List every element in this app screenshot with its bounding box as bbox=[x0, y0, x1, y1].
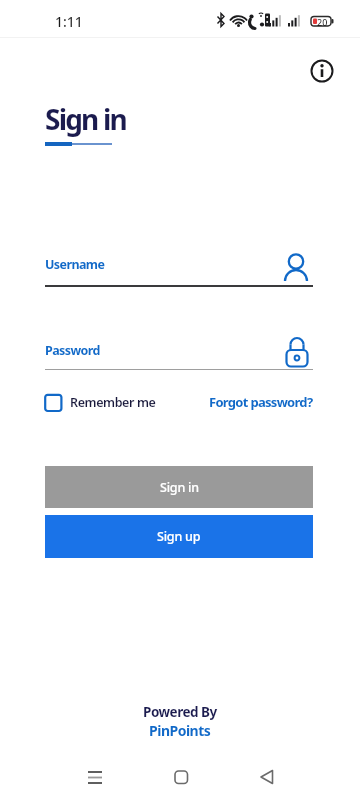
button[interactable] bbox=[77, 759, 113, 795]
button[interactable]: Password bbox=[45, 334, 313, 370]
button[interactable] bbox=[163, 759, 199, 795]
staticText: Sign in bbox=[160, 479, 199, 496]
staticText: Sign up bbox=[157, 528, 201, 545]
staticText: 1:11 bbox=[55, 12, 83, 31]
button[interactable] bbox=[249, 759, 285, 795]
button[interactable]: Remember me bbox=[44, 393, 156, 412]
staticText: Password bbox=[45, 342, 100, 359]
button[interactable]: PinPoints bbox=[149, 721, 211, 740]
button[interactable]: Sign in bbox=[45, 466, 313, 508]
staticText: Username bbox=[45, 256, 105, 273]
button[interactable]: Forgot password? bbox=[209, 393, 313, 411]
button[interactable]: Username bbox=[45, 248, 313, 286]
button[interactable]: Sign up bbox=[45, 515, 313, 558]
staticText: Sign in bbox=[45, 100, 126, 138]
staticText: 20 bbox=[317, 16, 328, 28]
staticText: Remember me bbox=[70, 394, 156, 411]
button[interactable] bbox=[306, 55, 338, 87]
staticText: Powered By bbox=[143, 703, 217, 721]
